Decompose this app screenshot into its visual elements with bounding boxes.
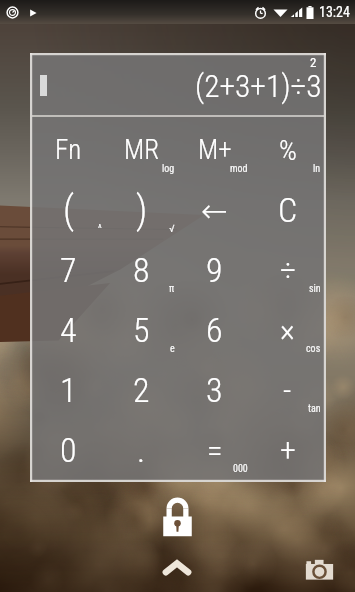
button[interactable]: ←: [178, 177, 251, 237]
staticText: e: [170, 343, 175, 355]
button[interactable]: ): [105, 177, 178, 237]
button[interactable]: 5: [105, 297, 178, 357]
button[interactable]: 3: [178, 357, 251, 417]
button[interactable]: ×: [251, 297, 324, 357]
staticText: -: [283, 371, 292, 409]
staticText: 13:24: [319, 4, 350, 20]
button[interactable]: Unlock slider: [164, 560, 190, 575]
staticText: ): [136, 188, 148, 233]
staticText: ÷: [280, 251, 296, 289]
staticText: 0: [60, 430, 77, 470]
staticText: 9: [206, 250, 223, 290]
staticText: =: [207, 431, 223, 469]
button[interactable]: -: [251, 357, 324, 417]
staticText: ^: [98, 223, 102, 235]
staticText: ×: [280, 311, 295, 349]
button[interactable]: 9: [178, 237, 251, 297]
button[interactable]: =: [178, 417, 251, 477]
button[interactable]: 6: [178, 297, 251, 357]
button[interactable]: Unlock: [162, 499, 193, 537]
button[interactable]: 0: [32, 417, 105, 477]
staticText: 1: [60, 370, 77, 410]
button[interactable]: 1: [32, 357, 105, 417]
staticText: ←: [201, 192, 228, 229]
staticText: (: [63, 188, 75, 233]
staticText: mod: [230, 163, 248, 175]
button[interactable]: ÷: [251, 237, 324, 297]
staticText: 4: [60, 310, 77, 350]
button[interactable]: M+: [178, 117, 251, 177]
staticText: 2: [310, 55, 317, 70]
staticText: C: [278, 190, 298, 230]
staticText: sin: [309, 283, 321, 295]
button[interactable]: MR: [105, 117, 178, 177]
staticText: π: [169, 283, 175, 295]
staticText: 2: [133, 370, 150, 410]
staticText: 5: [133, 310, 150, 350]
staticText: +: [280, 431, 296, 469]
staticText: (2+3+1)÷3: [195, 68, 322, 105]
staticText: 6: [206, 310, 223, 350]
staticText: %: [279, 134, 297, 167]
staticText: Fn: [55, 134, 82, 166]
button[interactable]: %: [251, 117, 324, 177]
button[interactable]: 7: [32, 237, 105, 297]
staticText: 7: [60, 250, 77, 290]
staticText: MR: [124, 134, 160, 166]
staticText: cos: [306, 343, 321, 355]
button[interactable]: 4: [32, 297, 105, 357]
staticText: ln: [313, 163, 321, 175]
button[interactable]: +: [251, 417, 324, 477]
staticText: √: [169, 223, 175, 235]
staticText: M+: [198, 134, 232, 166]
staticText: 8: [133, 250, 150, 290]
button[interactable]: C: [251, 177, 324, 237]
button[interactable]: 8: [105, 237, 178, 297]
staticText: log: [162, 163, 175, 175]
staticText: 000: [233, 463, 248, 475]
staticText: 3: [206, 370, 223, 410]
button[interactable]: Camera: [305, 558, 334, 581]
button[interactable]: .: [105, 417, 178, 477]
staticText: .: [137, 430, 146, 470]
staticText: tan: [308, 403, 321, 415]
button[interactable]: 2: [105, 357, 178, 417]
button[interactable]: (: [32, 177, 105, 237]
button[interactable]: Fn: [32, 117, 105, 177]
